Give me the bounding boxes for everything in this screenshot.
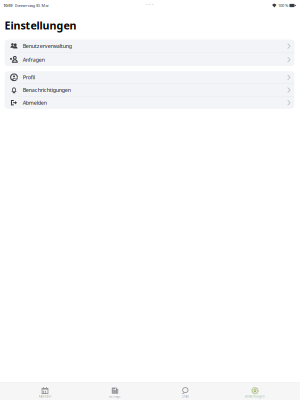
staticText: Donnerstag 30. Mai [15,3,49,8]
staticText: Profil [23,74,35,81]
button[interactable]: Benachrichtigungen [5,84,294,97]
button[interactable]: Abmelden [5,97,294,109]
staticText: Chats [181,395,188,398]
button[interactable]: Einstellungen [220,383,290,400]
staticText: • • • [146,1,154,7]
button[interactable]: Anfragen [5,53,294,66]
button[interactable]: Chats [150,383,220,400]
staticText: Benutzerverwaltung [23,42,72,50]
staticText: Abmelden [23,99,47,106]
staticText: 100 % [278,3,288,8]
button[interactable]: Beiträge [80,383,150,400]
button[interactable]: Kalender [10,383,80,400]
staticText: Einstellungen [4,18,76,32]
button[interactable]: Benutzerverwaltung [5,39,294,53]
button[interactable]: Profil [5,71,294,84]
staticText: 10:59 [3,3,12,8]
staticText: Einstellungen [245,395,265,398]
staticText: Benachrichtigungen [23,86,71,94]
staticText: Beiträge [109,395,121,398]
staticText: Kalender [38,395,51,398]
staticText: Anfragen [23,56,45,63]
